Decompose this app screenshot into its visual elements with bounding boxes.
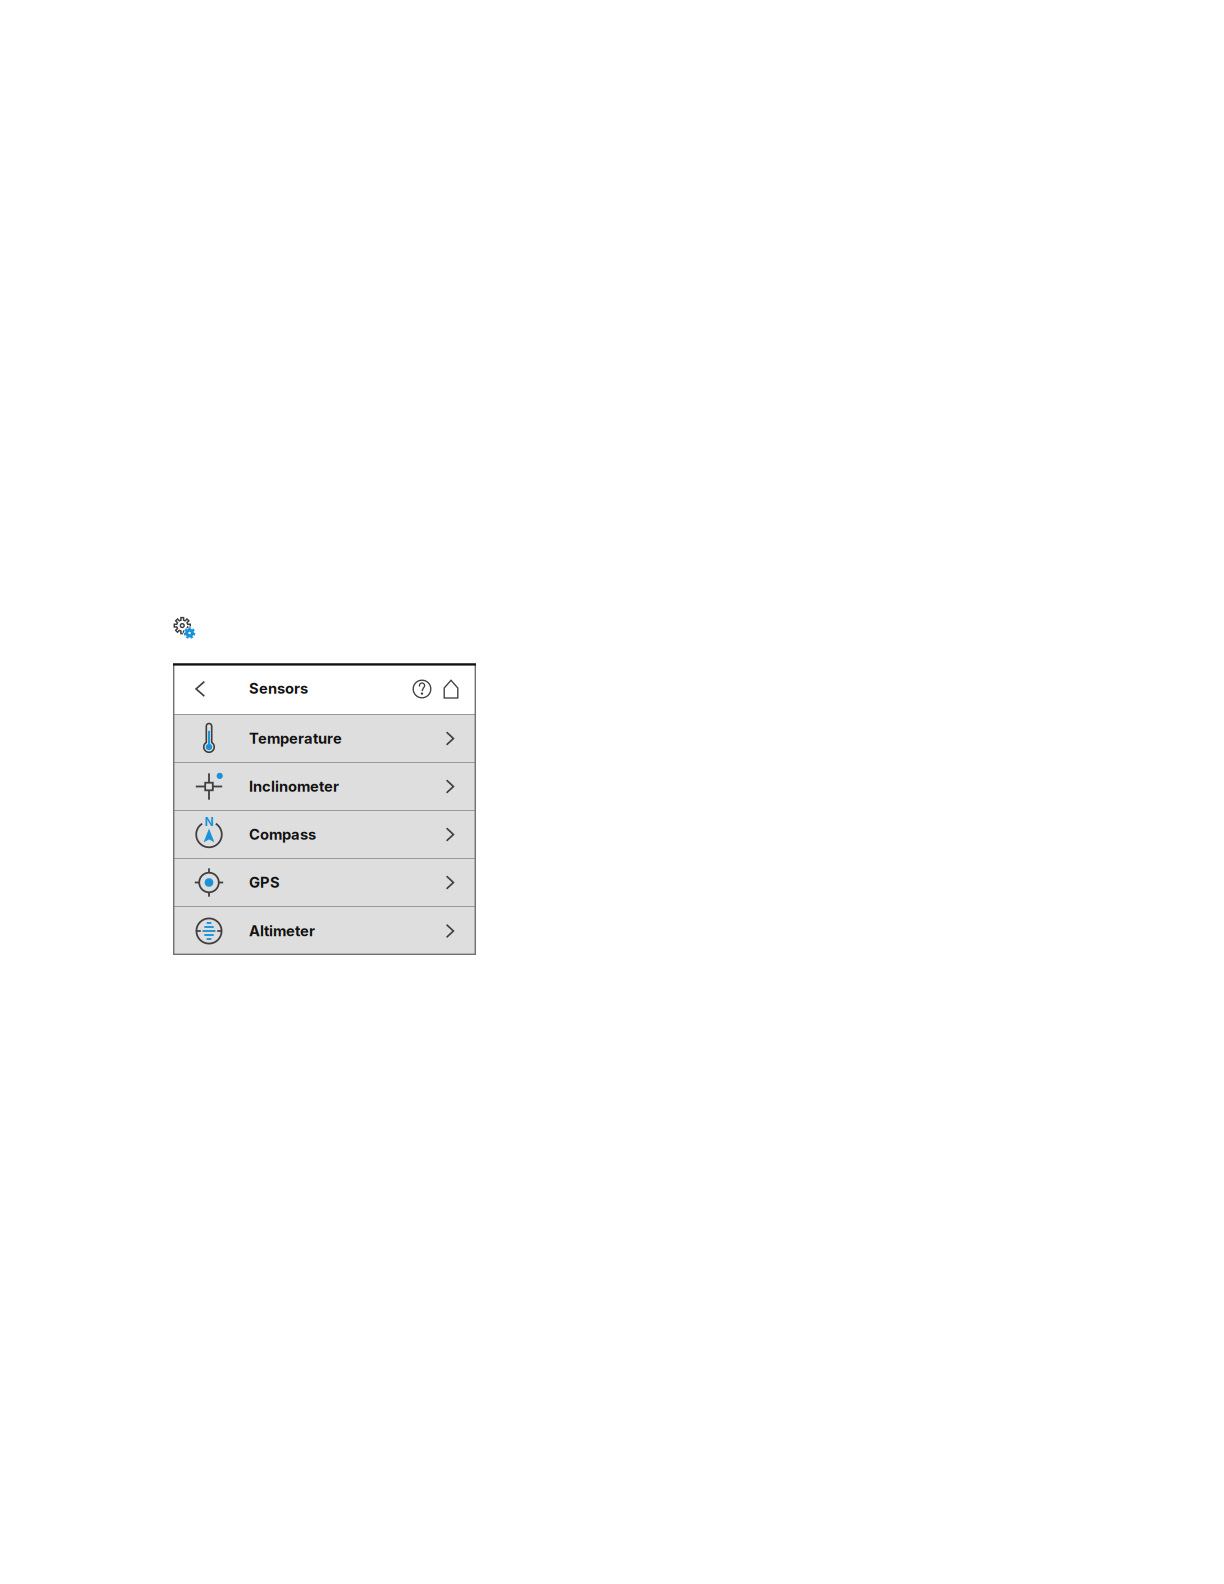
staticText: Temperature [249,730,342,747]
button[interactable]: Back [184,663,216,714]
button[interactable]: GPS [173,859,476,906]
button[interactable]: Altimeter [173,907,476,955]
button[interactable]: Inclinometer [173,763,476,810]
staticText: Compass [249,826,316,843]
button[interactable]: Compass [173,811,476,858]
button[interactable]: Help [407,663,437,714]
button[interactable]: Temperature [173,715,476,762]
staticText: GPS [249,874,280,891]
button[interactable]: Home [436,664,466,715]
staticText: Inclinometer [249,778,339,795]
staticText: Altimeter [249,922,315,940]
staticText: Sensors [249,680,308,697]
